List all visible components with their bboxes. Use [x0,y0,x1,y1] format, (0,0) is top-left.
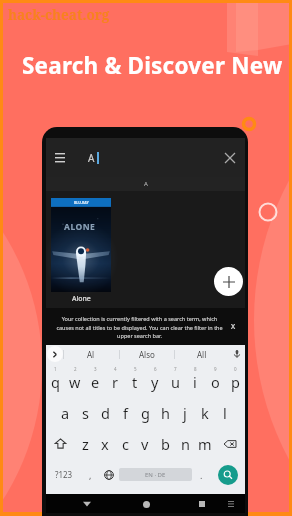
staticText: 4 [114,366,117,372]
button[interactable]: Clear search [219,147,241,169]
button[interactable]: b [155,428,175,459]
button[interactable]: Dismiss [225,319,241,335]
staticText: BLU-RAY [74,200,89,205]
button[interactable]: m [195,428,215,459]
staticText: hack-cheat.org [8,6,110,24]
button[interactable]: , [81,459,99,490]
button[interactable]: Recent apps [194,496,210,512]
staticText: 7 [174,366,177,372]
button[interactable]: 4 [105,366,125,397]
staticText: All [197,349,207,360]
button[interactable]: 7 [165,366,185,397]
staticText: l [223,403,227,423]
button[interactable]: 1 [46,366,65,397]
staticText: Alone [72,294,91,304]
button[interactable]: v [135,428,155,459]
button[interactable]: g [135,397,155,428]
staticText: 9 [214,366,217,372]
staticText: s [82,403,89,423]
staticText: 3 [94,366,97,372]
button[interactable]: f [115,397,135,428]
staticText: 0 [234,366,237,372]
button[interactable]: Switch keyboard [224,497,238,511]
staticText: a [61,403,70,423]
staticText: , [89,469,92,481]
staticText: Also [139,349,155,360]
staticText: 8 [194,366,197,372]
button[interactable]: h [155,397,175,428]
staticText: Your collection is currently filtered wi… [54,315,225,339]
staticText: t [132,372,138,392]
staticText: i [193,372,197,392]
button[interactable]: c [115,428,135,459]
staticText: c [122,434,129,454]
staticText: u [171,372,180,392]
button[interactable]: 6 [145,366,165,397]
button[interactable]: BLU-RAY [51,198,111,292]
button[interactable]: z [75,428,95,459]
button[interactable]: 8 [185,366,205,397]
staticText: r [112,372,118,392]
staticText: Al [87,349,95,360]
staticText: 1 [54,366,57,372]
staticText: A [144,180,148,188]
button[interactable]: x [95,428,115,459]
button[interactable]: Change language [99,459,119,490]
button[interactable]: a [55,397,75,428]
staticText: v [141,434,149,454]
staticText: n [181,434,190,454]
button[interactable]: 2 [65,366,85,397]
staticText: 2 [74,366,77,372]
button[interactable]: Home [138,496,154,512]
button[interactable]: Also [119,345,174,363]
staticText: 6 [154,366,157,372]
staticText: m [198,434,212,454]
staticText: ALONE [64,221,96,233]
staticText: y [151,372,159,392]
button[interactable]: 5 [125,366,145,397]
button[interactable]: d [95,397,115,428]
staticText: g [141,403,150,423]
button[interactable]: All [174,345,229,363]
button[interactable]: k [195,397,215,428]
staticText: . [200,469,203,481]
staticText: z [82,434,89,454]
button[interactable]: Shift [46,428,75,459]
staticText: o [211,372,220,392]
staticText: Search & Discover New [22,50,283,81]
button[interactable]: Back [79,496,95,512]
staticText: e [91,372,100,392]
button[interactable]: EN · DE [119,468,192,481]
button[interactable]: 0 [225,366,245,397]
button[interactable]: . [192,459,210,490]
staticText: w [69,372,81,392]
button[interactable]: n [175,428,195,459]
staticText: 5 [134,366,137,372]
button[interactable]: j [175,397,195,428]
staticText: d [101,403,110,423]
staticText: p [231,372,240,392]
button[interactable]: Voice input [229,346,245,362]
button[interactable]: Backspace [215,428,245,459]
staticText: k [201,403,209,423]
button[interactable]: 9 [205,366,225,397]
staticText: h [161,403,170,423]
button[interactable]: 3 [85,366,105,397]
staticText: ?123 [55,469,73,480]
staticText: f [123,403,128,423]
staticText: EN · DE [145,471,166,479]
staticText: A [88,151,95,165]
staticText: x [101,434,109,454]
button[interactable]: l [215,397,235,428]
button[interactable]: Add [214,267,243,296]
button[interactable]: ?123 [46,459,81,490]
button[interactable]: Menu [50,148,70,168]
button[interactable]: Al [63,345,119,363]
button[interactable]: Search [218,465,238,485]
button[interactable]: More suggestions [46,345,63,363]
staticText: q [51,372,60,392]
staticText: b [161,434,170,454]
staticText: X [231,322,236,332]
staticText: j [183,403,187,423]
button[interactable]: s [75,397,95,428]
